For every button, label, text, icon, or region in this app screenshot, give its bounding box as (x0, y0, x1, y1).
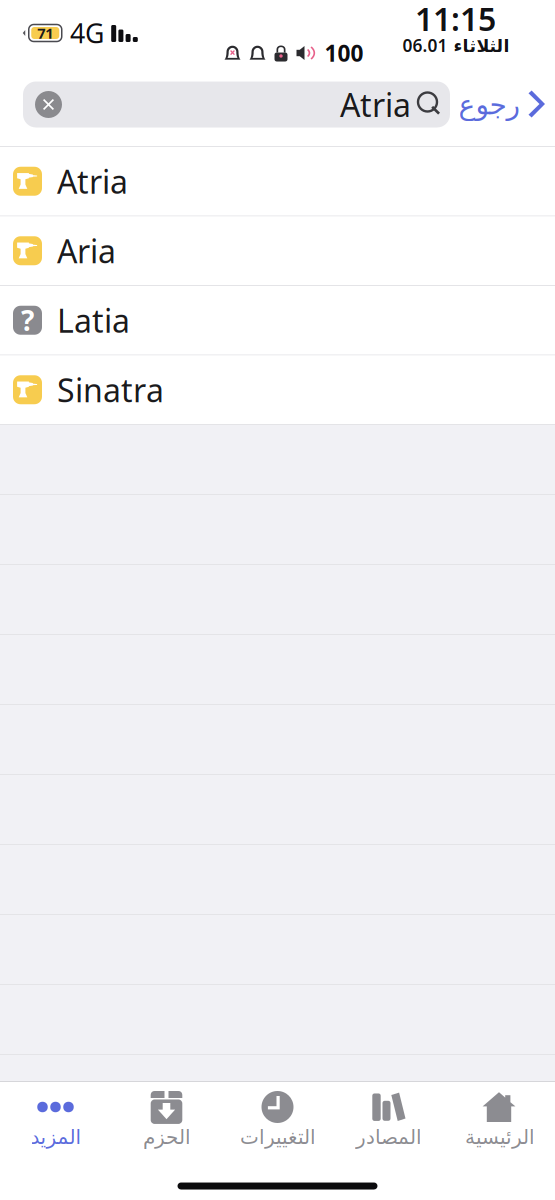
button[interactable]: الرئيسية (444, 1082, 555, 1156)
button[interactable]: التغييرات (222, 1082, 333, 1156)
button[interactable]: المصادر (333, 1082, 444, 1156)
staticText: 11:15 (415, 0, 496, 40)
staticText: 4G (70, 15, 104, 51)
button[interactable]: الحزم (111, 1082, 222, 1156)
staticText: Atria (57, 160, 128, 202)
staticText: الرئيسية (464, 1126, 534, 1148)
staticText: Latia (57, 299, 130, 341)
staticText: Aria (57, 229, 116, 272)
staticText: 100 (324, 38, 363, 68)
button[interactable]: رجوع (450, 81, 555, 127)
button[interactable]: ? (0, 286, 555, 355)
button[interactable]: Clear search (35, 91, 62, 118)
staticText: Sinatra (57, 368, 164, 411)
staticText: Atria (340, 83, 411, 126)
staticText: المصادر (355, 1126, 421, 1148)
staticText: رجوع (458, 89, 520, 120)
staticText: ? (21, 302, 34, 339)
button[interactable]: المزيد (0, 1082, 111, 1156)
staticText: الحزم (142, 1126, 190, 1148)
staticText: الثلاثاء 06.01 (402, 34, 509, 57)
staticText: التغييرات (239, 1126, 315, 1148)
button[interactable]: Aria (0, 216, 555, 286)
staticText: المزيد (30, 1126, 81, 1148)
button[interactable]: Atria (0, 147, 555, 216)
staticText: 71 (37, 23, 53, 43)
button[interactable]: Sinatra (0, 355, 555, 425)
